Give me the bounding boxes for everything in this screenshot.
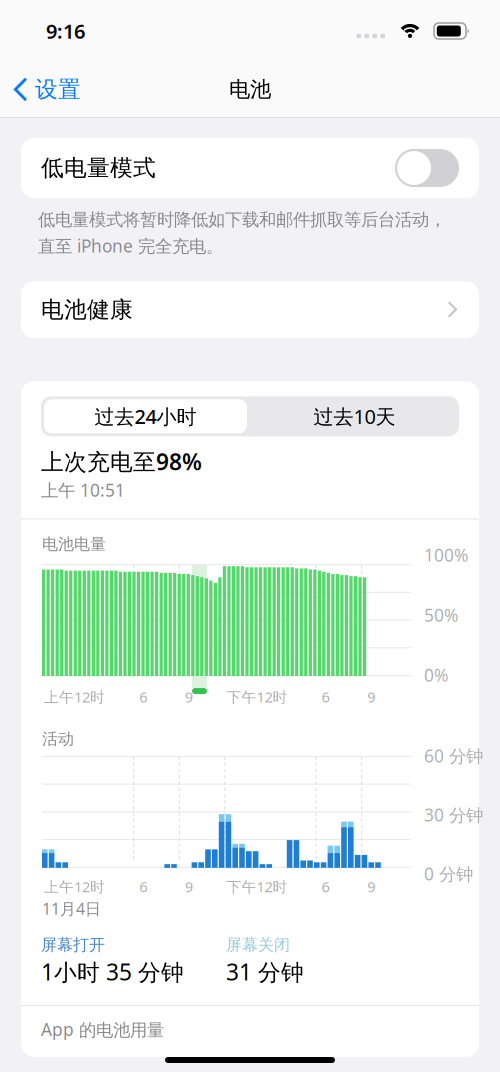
staticText: 直至 iPhone 完全充电。 [38,234,223,257]
staticText: 100% [424,543,468,566]
staticText: 60 分钟 [424,744,483,767]
staticText: 上午 10:51 [41,478,125,501]
staticText: 0 分钟 [424,862,473,885]
staticText: 上次充电至98% [41,446,202,476]
staticText: 50% [424,603,458,626]
staticText: 11月4日 [42,898,101,919]
staticText: 过去24小时 [94,403,196,430]
staticText: 活动 [42,729,74,749]
staticText: 31 分钟 [226,957,304,987]
staticText: 上午12时 [44,687,105,707]
staticText: 6 [139,877,147,896]
staticText: 下午12时 [226,687,287,707]
staticText: 上午12时 [44,877,105,896]
staticText: 6 [139,687,147,707]
button[interactable]: 设置 [0,70,89,109]
staticText: 电池 [229,76,271,103]
staticText: 6 [322,877,330,896]
staticText: 过去10天 [313,403,395,430]
button[interactable]: 过去10天 [250,403,459,430]
staticText: 屏幕关闭 [226,935,290,955]
staticText: 9 [367,877,375,896]
staticText: 低电量模式 [41,154,156,182]
staticText: 30 分钟 [424,803,483,826]
staticText: 6 [322,687,330,707]
staticText: 0% [424,663,448,686]
staticText: 设置 [35,76,81,103]
staticText: 电池电量 [42,534,106,554]
staticText: 屏幕打开 [41,935,105,955]
staticText: 9 [185,687,193,707]
staticText: 电池健康 [41,296,133,324]
staticText: 下午12时 [226,877,287,896]
staticText: 9:16 [46,18,85,44]
staticText: 9 [367,687,375,707]
button[interactable]: 过去24小时 [41,399,250,433]
button[interactable]: 电池健康 [0,257,500,338]
staticText: 9 [185,877,193,896]
staticText: 1小时 35 分钟 [41,957,184,987]
staticText: 低电量模式将暂时降低如下载和邮件抓取等后台活动， [38,209,446,230]
staticText: App 的电池用量 [41,1018,164,1041]
